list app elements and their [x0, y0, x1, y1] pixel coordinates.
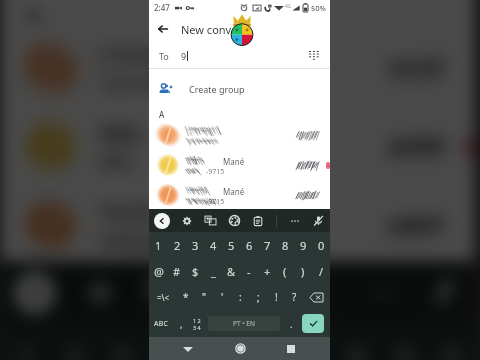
button[interactable]: &: [222, 258, 240, 284]
button[interactable]: ABC: [149, 310, 174, 337]
button[interactable]: 4: [145, 322, 192, 360]
staticText: _: [211, 264, 216, 279]
button[interactable]: Translate: [205, 215, 216, 226]
staticText: .: [290, 318, 293, 330]
button[interactable]: 0: [312, 232, 330, 258]
staticText: 9: [300, 238, 307, 253]
button[interactable]: Back: [176, 337, 200, 360]
button[interactable]: Mané: [1, 107, 475, 186]
staticText: 4: [210, 238, 217, 253]
button[interactable]: Mané: [149, 180, 330, 210]
staticText: Mané: [223, 156, 245, 167]
button[interactable]: 3: [186, 232, 204, 258]
staticText: !: [275, 290, 278, 304]
staticText: 8: [282, 238, 289, 253]
button[interactable]: !: [267, 284, 285, 310]
button[interactable]: 8: [333, 322, 380, 360]
button[interactable]: _: [204, 258, 222, 284]
button[interactable]: Enter: [302, 314, 324, 333]
button[interactable]: Expand toolbar: [14, 272, 56, 314]
button[interactable]: 6: [239, 322, 286, 360]
button[interactable]: 1 2: [189, 310, 205, 337]
staticText: 9: [181, 50, 187, 62]
staticText: ": [202, 290, 207, 304]
staticText: -9715: [206, 167, 225, 176]
button[interactable]: Themes: [229, 215, 240, 226]
button[interactable]: 5: [222, 232, 240, 258]
button[interactable]: ,: [174, 310, 189, 337]
button[interactable]: 9: [380, 322, 428, 360]
button[interactable]: ?: [285, 284, 303, 310]
staticText: 8: [349, 338, 367, 360]
staticText: 6: [246, 238, 253, 253]
staticText: *: [183, 290, 189, 304]
button[interactable]: 7: [258, 232, 276, 258]
button[interactable]: Clipboard: [273, 280, 299, 306]
staticText: A: [159, 109, 165, 120]
staticText: &: [227, 264, 236, 279]
button[interactable]: Mané: [149, 150, 330, 180]
button[interactable]: *: [177, 284, 195, 310]
button[interactable]: +: [258, 258, 276, 284]
button[interactable]: Create group: [149, 69, 330, 109]
staticText: $: [192, 264, 199, 279]
button[interactable]: /: [312, 258, 330, 284]
button[interactable]: 5: [192, 322, 239, 360]
button[interactable]: 7: [286, 322, 333, 360]
button[interactable]: Mané: [1, 186, 475, 264]
button[interactable]: Settings: [87, 280, 113, 306]
button[interactable]: $: [186, 258, 204, 284]
button[interactable]: @: [149, 258, 168, 284]
button[interactable]: 4: [204, 232, 222, 258]
button[interactable]: ): [294, 258, 312, 284]
button[interactable]: 2: [168, 232, 186, 258]
button[interactable]: 1: [149, 232, 168, 258]
button[interactable]: PT • EN: [208, 316, 280, 331]
button[interactable]: =\<: [149, 284, 177, 310]
staticText: ABC: [154, 319, 169, 329]
button[interactable]: Backspace: [303, 284, 330, 310]
staticText: 2:47: [154, 2, 170, 13]
button[interactable]: Themes: [210, 277, 239, 306]
button[interactable]: More: [290, 216, 300, 226]
button[interactable]: 8: [276, 232, 294, 258]
button[interactable]: Expand toolbar: [154, 213, 170, 229]
staticText: 3 4: [193, 324, 201, 331]
button[interactable]: .: [283, 310, 299, 337]
button[interactable]: Voice input off: [313, 215, 324, 226]
button[interactable]: Recents: [279, 337, 303, 360]
button[interactable]: 6: [240, 232, 258, 258]
button[interactable]: ": [195, 284, 213, 310]
button[interactable]: #: [168, 258, 186, 284]
staticText: ': [221, 290, 224, 304]
button[interactable]: [149, 120, 330, 150]
button[interactable]: 9: [294, 232, 312, 258]
button[interactable]: Voice input off: [430, 277, 459, 306]
staticText: 1 2: [193, 317, 201, 324]
button[interactable]: Translate: [147, 277, 176, 306]
button[interactable]: Home: [228, 337, 252, 360]
button[interactable]: [1, 28, 475, 107]
button[interactable]: (: [276, 258, 294, 284]
button[interactable]: Back: [149, 15, 177, 43]
button[interactable]: Clipboard: [253, 216, 263, 226]
button[interactable]: Settings: [182, 216, 192, 226]
button[interactable]: :: [231, 284, 249, 310]
button[interactable]: -: [240, 258, 258, 284]
staticText: +: [264, 264, 271, 279]
button[interactable]: Dialpad: [304, 46, 324, 66]
button[interactable]: ': [213, 284, 231, 310]
staticText: /: [319, 264, 324, 279]
staticText: 1: [155, 238, 162, 253]
button[interactable]: ;: [249, 284, 267, 310]
